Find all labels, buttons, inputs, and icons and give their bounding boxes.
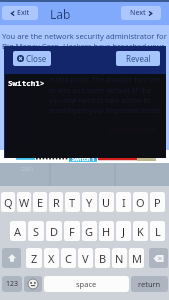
staticText: D [50, 224, 59, 239]
staticText: N [115, 251, 124, 266]
staticText: C [65, 251, 72, 266]
staticText: P [154, 195, 161, 210]
button[interactable]: Y [82, 192, 97, 212]
button[interactable]: Z [26, 248, 42, 268]
staticText: F [69, 224, 75, 239]
button[interactable]: Shift [2, 248, 21, 268]
button[interactable]: Next [121, 6, 161, 20]
staticText: Y [86, 195, 93, 210]
button[interactable]: W [17, 192, 31, 212]
staticText: Close [26, 53, 47, 64]
staticText: attack ports. The attacker has one or le… [49, 75, 162, 115]
button[interactable]: M [129, 248, 144, 268]
staticText: 123 [6, 279, 19, 289]
staticText: K [137, 224, 144, 239]
staticText: return [138, 279, 161, 289]
button[interactable]: F [64, 221, 80, 241]
button[interactable]: R [49, 192, 63, 212]
staticText: B [99, 251, 107, 266]
button[interactable]: C [61, 248, 76, 268]
button[interactable]: Close [13, 51, 51, 66]
staticText: H [102, 224, 111, 239]
staticText: T [69, 195, 76, 210]
button[interactable]: D [46, 221, 62, 241]
button[interactable]: Reveal [116, 51, 160, 66]
staticText: Switch1> [8, 78, 45, 88]
staticText: Gi0/1 [21, 166, 34, 173]
staticText: M [132, 251, 142, 266]
staticText: Next [130, 8, 146, 18]
button[interactable]: X [44, 248, 59, 268]
staticText: X [48, 251, 55, 266]
button[interactable]: H [99, 221, 114, 241]
button[interactable]: L [150, 221, 165, 241]
staticText: W [19, 195, 30, 210]
staticText: G [85, 224, 94, 239]
staticText: L [155, 224, 161, 239]
button[interactable]: E [33, 192, 47, 212]
button[interactable]: U [99, 192, 114, 212]
button[interactable]: Exit [2, 6, 38, 20]
staticText: S [33, 224, 40, 239]
button[interactable]: Backspace [149, 248, 168, 268]
button[interactable]: V [78, 248, 93, 268]
button[interactable]: T [65, 192, 80, 212]
button[interactable]: Emoji keyboard [24, 276, 42, 292]
button[interactable]: space [44, 276, 129, 292]
staticText: R [53, 195, 60, 210]
staticText: J [122, 224, 126, 239]
button[interactable]: O [133, 192, 148, 212]
staticText: I [122, 195, 126, 210]
button[interactable]: A [10, 221, 26, 241]
staticText: A [14, 224, 22, 239]
button[interactable]: N [112, 248, 127, 268]
button[interactable]: 123 [2, 276, 22, 292]
staticText: Switch 1 [72, 155, 95, 162]
staticText: Exit [17, 8, 30, 18]
button[interactable]: J [116, 221, 131, 241]
button[interactable]: return [131, 276, 168, 292]
staticText: U [102, 195, 111, 210]
staticText: Z [31, 251, 38, 266]
staticText: V [82, 251, 89, 266]
staticText: Q [4, 195, 13, 210]
staticText: O [136, 195, 145, 210]
button[interactable]: G [82, 221, 97, 241]
staticText: E [37, 195, 44, 210]
staticText: You are the network security administrat… [2, 31, 167, 51]
staticText: Reveal [126, 53, 151, 64]
button[interactable]: K [133, 221, 148, 241]
button[interactable]: P [150, 192, 165, 212]
button[interactable]: I [116, 192, 131, 212]
staticText: space [76, 279, 97, 289]
button[interactable]: B [95, 248, 110, 268]
button[interactable]: S [28, 221, 44, 241]
staticText: Lab [50, 6, 71, 22]
button[interactable]: Q [1, 192, 15, 212]
